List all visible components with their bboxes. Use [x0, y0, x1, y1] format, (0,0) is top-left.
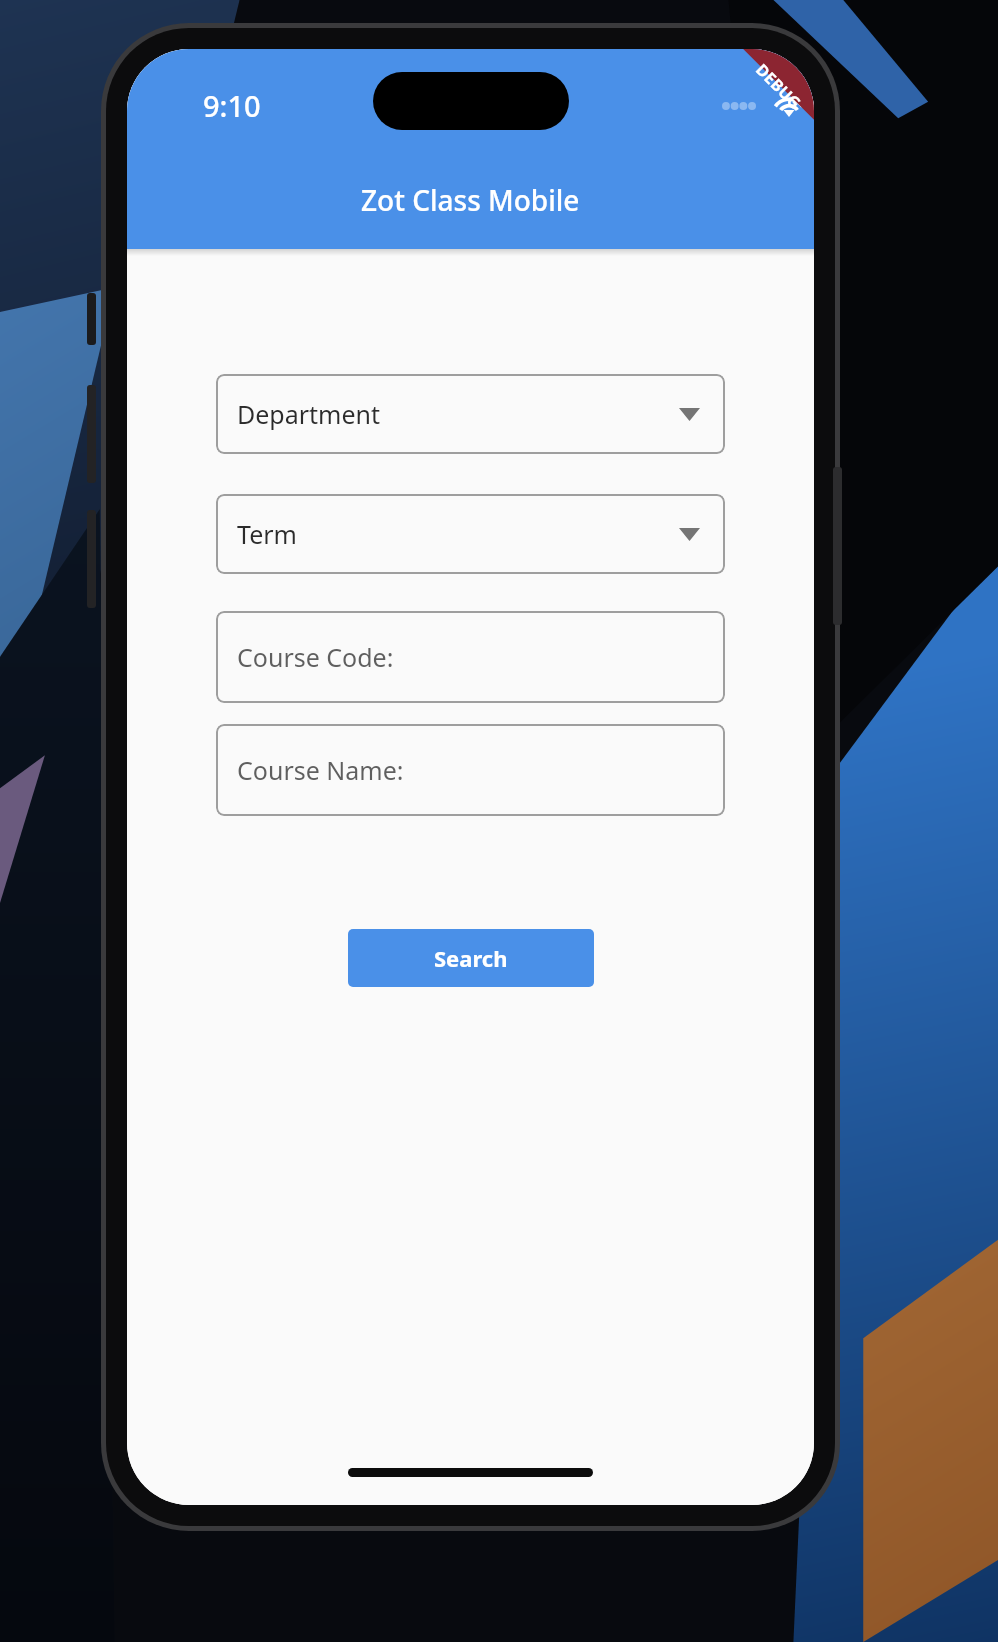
staticText: Course Name:: [237, 753, 404, 787]
button[interactable]: Department: [216, 374, 725, 454]
staticText: Term: [237, 517, 297, 551]
button[interactable]: Course Name:: [216, 724, 725, 816]
other: Debug banner: [696, 49, 814, 167]
button[interactable]: Term: [216, 494, 725, 574]
staticText: Course Code:: [237, 640, 394, 674]
staticText: Department: [237, 397, 381, 431]
staticText: DEBUG: [751, 59, 806, 113]
staticText: Search: [434, 943, 508, 973]
button[interactable]: Search: [348, 929, 594, 987]
staticText: Zot Class Mobile: [361, 181, 580, 219]
staticText: 9:10: [203, 86, 261, 125]
button[interactable]: Course Code:: [216, 611, 725, 703]
